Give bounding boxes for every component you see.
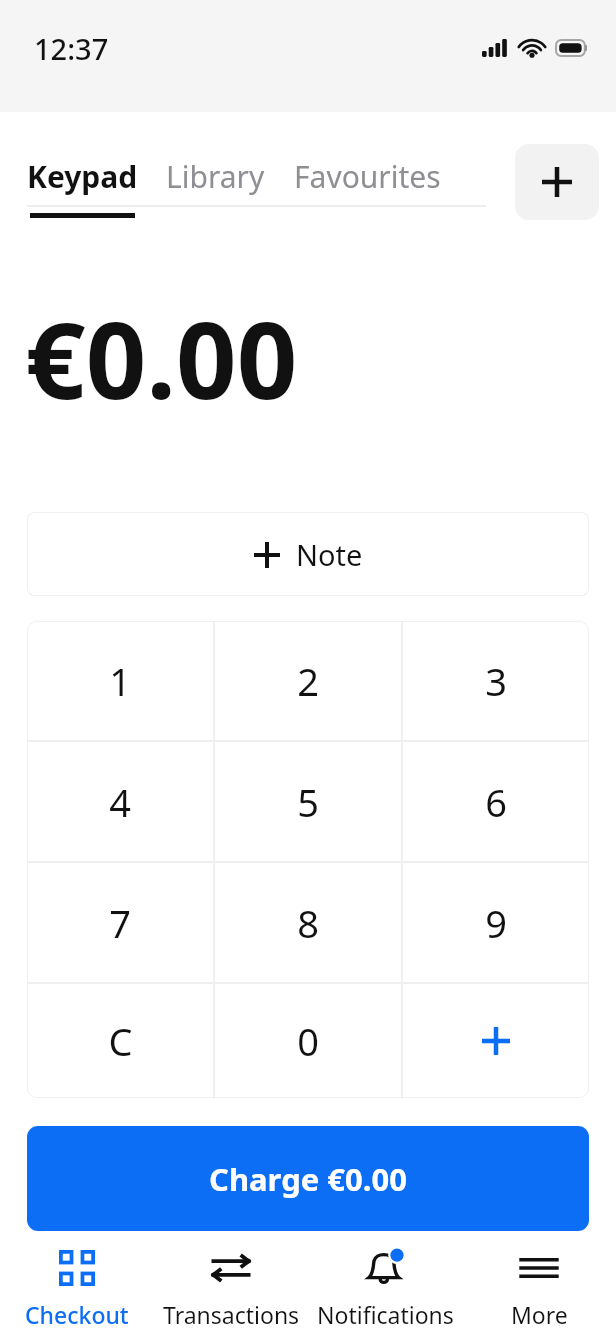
button[interactable]: Charge €0.00 xyxy=(27,1126,589,1231)
button[interactable]: 7 xyxy=(27,863,213,982)
button[interactable]: Add xyxy=(515,144,599,220)
button[interactable]: Notifications xyxy=(308,1231,462,1330)
button[interactable]: 6 xyxy=(403,742,589,861)
button[interactable]: C xyxy=(27,984,213,1098)
button[interactable]: 3 xyxy=(403,621,589,740)
button[interactable]: More xyxy=(462,1231,616,1330)
staticText: Library xyxy=(166,156,265,197)
staticText: €0.00 xyxy=(25,286,298,430)
button[interactable]: Library xyxy=(166,156,265,197)
button[interactable]: 4 xyxy=(27,742,213,861)
button[interactable]: 2 xyxy=(215,621,401,740)
staticText: Note xyxy=(296,535,363,574)
staticText: 5 xyxy=(297,776,319,828)
button[interactable]: 9 xyxy=(403,863,589,982)
staticText: Transactions xyxy=(163,1299,300,1330)
staticText: More xyxy=(511,1299,568,1330)
staticText: 7 xyxy=(109,897,131,949)
button[interactable]: Favourites xyxy=(294,156,441,197)
staticText: 6 xyxy=(485,776,507,828)
staticText: 2 xyxy=(297,655,319,707)
staticText: Checkout xyxy=(25,1299,129,1330)
button[interactable]: Transactions xyxy=(154,1231,308,1330)
button[interactable]: 0 xyxy=(215,984,401,1098)
button[interactable]: 8 xyxy=(215,863,401,982)
staticText: 8 xyxy=(297,897,319,949)
button[interactable]: Note xyxy=(27,512,589,596)
button[interactable]: 5 xyxy=(215,742,401,861)
other: Add item xyxy=(482,1027,510,1055)
staticText: Charge €0.00 xyxy=(209,1158,407,1200)
staticText: Favourites xyxy=(294,156,441,197)
staticText: 0 xyxy=(297,1015,319,1067)
staticText: Notifications xyxy=(317,1299,454,1330)
staticText: C xyxy=(108,1015,133,1067)
staticText: 4 xyxy=(109,776,131,828)
button[interactable]: 1 xyxy=(27,621,213,740)
button[interactable]: Checkout xyxy=(0,1231,154,1330)
staticText: 1 xyxy=(109,655,131,707)
button[interactable]: Keypad xyxy=(27,112,138,218)
button[interactable]: Add item xyxy=(403,984,589,1098)
staticText: 3 xyxy=(485,655,507,707)
staticText: 12:37 xyxy=(34,29,109,68)
staticText: Keypad xyxy=(27,156,138,197)
staticText: 9 xyxy=(485,897,507,949)
